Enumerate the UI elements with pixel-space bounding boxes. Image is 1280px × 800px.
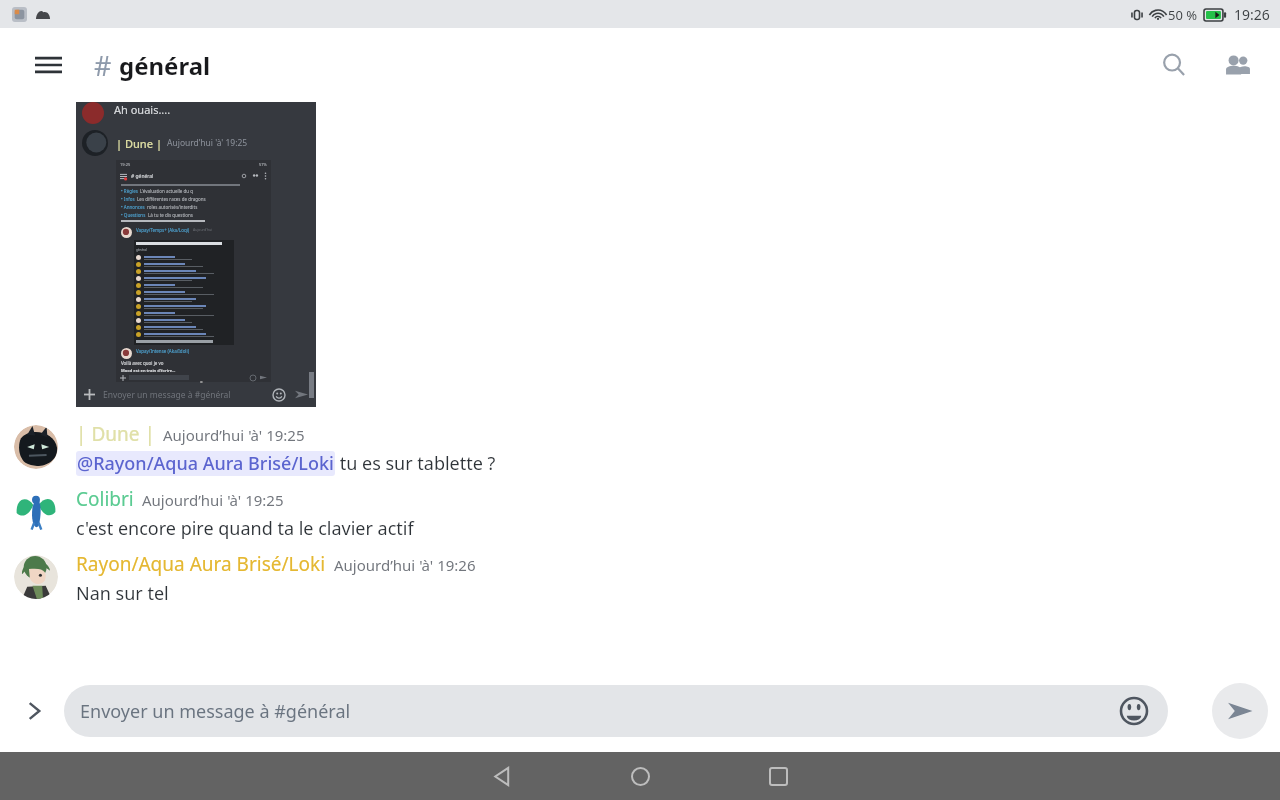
staticText: 57% — [259, 162, 267, 167]
staticText: Vapay/Intense (Aka/Idoli) — [136, 348, 190, 354]
button[interactable]: Search — [1148, 39, 1200, 91]
button[interactable]: Send — [1212, 683, 1268, 739]
staticText: Aujourd’hui 'à' 19:26 — [334, 555, 476, 575]
staticText: Mood est en train d'écrire... — [121, 368, 176, 373]
button[interactable]: Home — [608, 752, 672, 800]
button[interactable]: Envoyer un message à #général — [64, 685, 1168, 737]
staticText: Aujourd'hui — [193, 227, 213, 232]
staticText: Les différentes races de dragons — [137, 196, 206, 202]
button[interactable]: Back — [470, 752, 534, 800]
staticText: # — [94, 47, 112, 84]
staticText: Là tu te dis questions — [148, 212, 193, 218]
staticText: | Dune | — [76, 421, 155, 447]
staticText: Voilà avec quoi je vo — [121, 360, 164, 366]
button[interactable]: Expand actions — [12, 689, 56, 733]
button[interactable]: Open channels drawer — [24, 41, 72, 89]
staticText: Aujourd’hui 'à' 19:25 — [163, 425, 305, 445]
staticText: Rayon/Aqua Aura Brisé/Loki — [76, 551, 326, 577]
staticText: • Annonces — [121, 204, 145, 210]
staticText: 19:26 — [1234, 5, 1270, 24]
staticText: # général — [131, 173, 154, 180]
button[interactable]: @Rayon/Aqua Aura Brisé/Loki — [76, 451, 335, 476]
staticText: Envoyer un message à #général — [103, 389, 231, 401]
staticText: Nan sur tel — [76, 581, 169, 606]
button[interactable]: Colibri — [0, 486, 1280, 541]
staticText: Vapay/Temps+ (Aka/Loqi) — [136, 227, 190, 233]
staticText: 19:25 — [120, 162, 131, 167]
staticText: | Dune | — [116, 136, 162, 151]
staticText: • Infos — [121, 196, 135, 202]
staticText: • Règles — [121, 188, 138, 194]
staticText: Envoyer un message à #général — [80, 699, 351, 724]
staticText: général — [119, 49, 211, 82]
staticText: Aujourd’hui 'à' 19:25 — [142, 490, 284, 510]
staticText: c'est encore pire quand ta le clavier ac… — [76, 516, 414, 541]
staticText: Colibri — [76, 486, 134, 512]
button[interactable]: Image attachment — [76, 102, 316, 407]
staticText: • Questions — [121, 212, 146, 218]
button[interactable]: | Dune | — [0, 421, 1280, 476]
staticText: 50 % — [1168, 6, 1198, 24]
staticText: général — [136, 248, 147, 252]
button[interactable]: Members — [1212, 39, 1264, 91]
button[interactable]: Emoji — [1112, 689, 1156, 733]
staticText: Ah ouais.... — [114, 102, 171, 117]
staticText: Aujourd’hui 'à' 19:25 — [167, 137, 248, 149]
button[interactable]: Rayon/Aqua Aura Brisé/Loki — [0, 551, 1280, 606]
button[interactable]: Recent apps — [746, 752, 810, 800]
staticText: L'évaluation actuelle du q — [140, 188, 194, 194]
staticText: tu es sur tablette ? — [335, 451, 496, 476]
staticText: @Rayon/Aqua Aura Brisé/Loki — [77, 451, 334, 476]
staticText: roles autorisés/interdits — [147, 204, 198, 210]
